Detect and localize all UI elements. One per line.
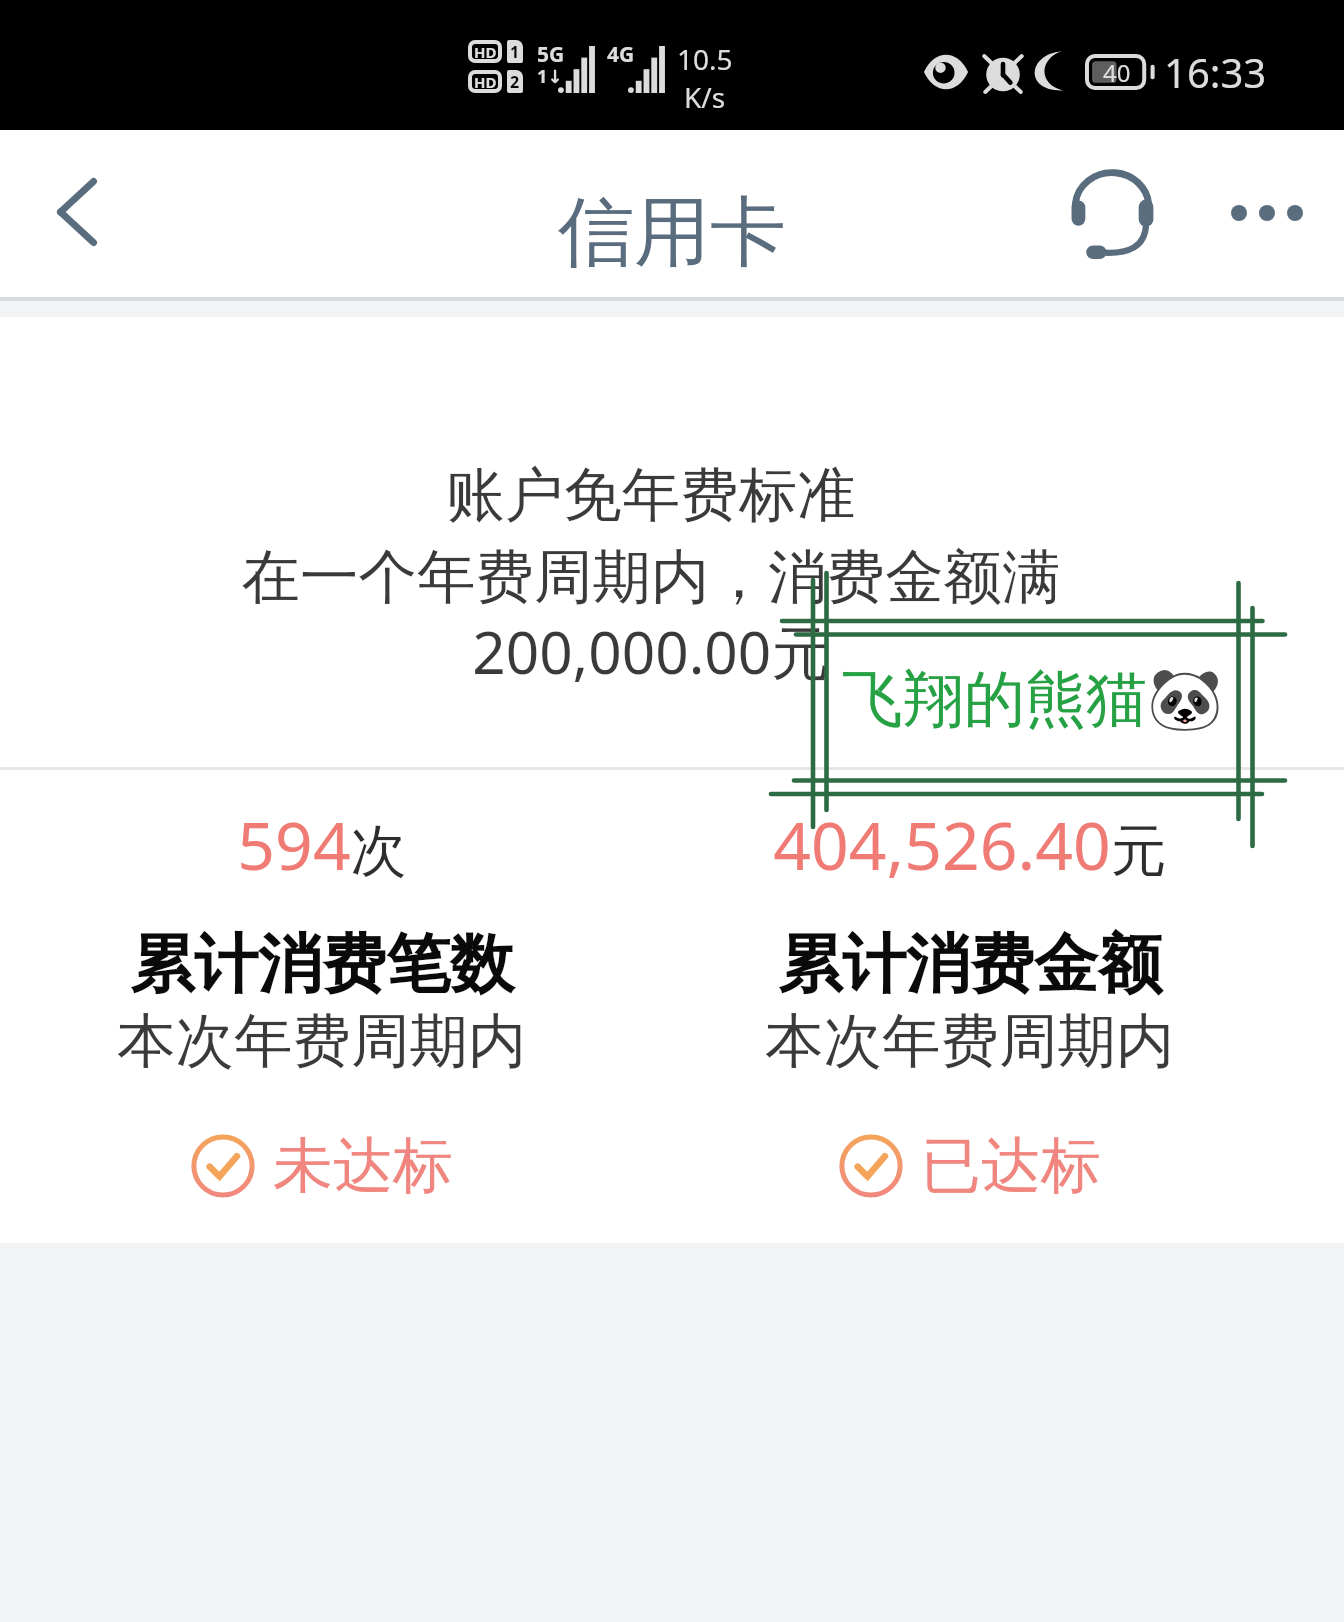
staticText: 40 bbox=[1103, 56, 1131, 89]
staticText: 404,526.40元 bbox=[773, 799, 1167, 889]
staticText: 本次年费周期内 bbox=[765, 1005, 1175, 1079]
staticText: HD bbox=[474, 42, 497, 62]
button[interactable]: Back bbox=[33, 168, 121, 256]
staticText: 2 bbox=[510, 71, 520, 93]
staticText: 5G bbox=[537, 40, 565, 69]
staticText: 1↓ bbox=[537, 64, 563, 89]
staticText: 4G bbox=[607, 40, 635, 69]
staticText: 未达标 bbox=[273, 1128, 453, 1204]
staticText: 账户免年费标准 bbox=[0, 459, 1323, 533]
staticText: 飞翔的熊猫🐼 bbox=[842, 661, 1223, 738]
staticText: 在一个年费周期内，消费金额满 200,000.00元 bbox=[0, 541, 1323, 691]
staticText: 16:33 bbox=[1164, 45, 1267, 99]
staticText: 本次年费周期内 bbox=[117, 1005, 527, 1079]
staticText: 1 bbox=[510, 41, 520, 63]
staticText: 10.5 bbox=[677, 40, 733, 78]
staticText: HD bbox=[474, 72, 497, 92]
staticText: K/s bbox=[684, 78, 726, 116]
button[interactable]: More options bbox=[1215, 168, 1319, 258]
staticText: 已达标 bbox=[921, 1128, 1101, 1204]
button[interactable]: Customer service bbox=[1066, 169, 1160, 263]
staticText: 信用卡 bbox=[558, 185, 786, 281]
staticText: 累计消费笔数 bbox=[130, 924, 514, 1005]
staticText: 594次 bbox=[237, 799, 407, 889]
staticText: 累计消费金额 bbox=[778, 924, 1162, 1005]
